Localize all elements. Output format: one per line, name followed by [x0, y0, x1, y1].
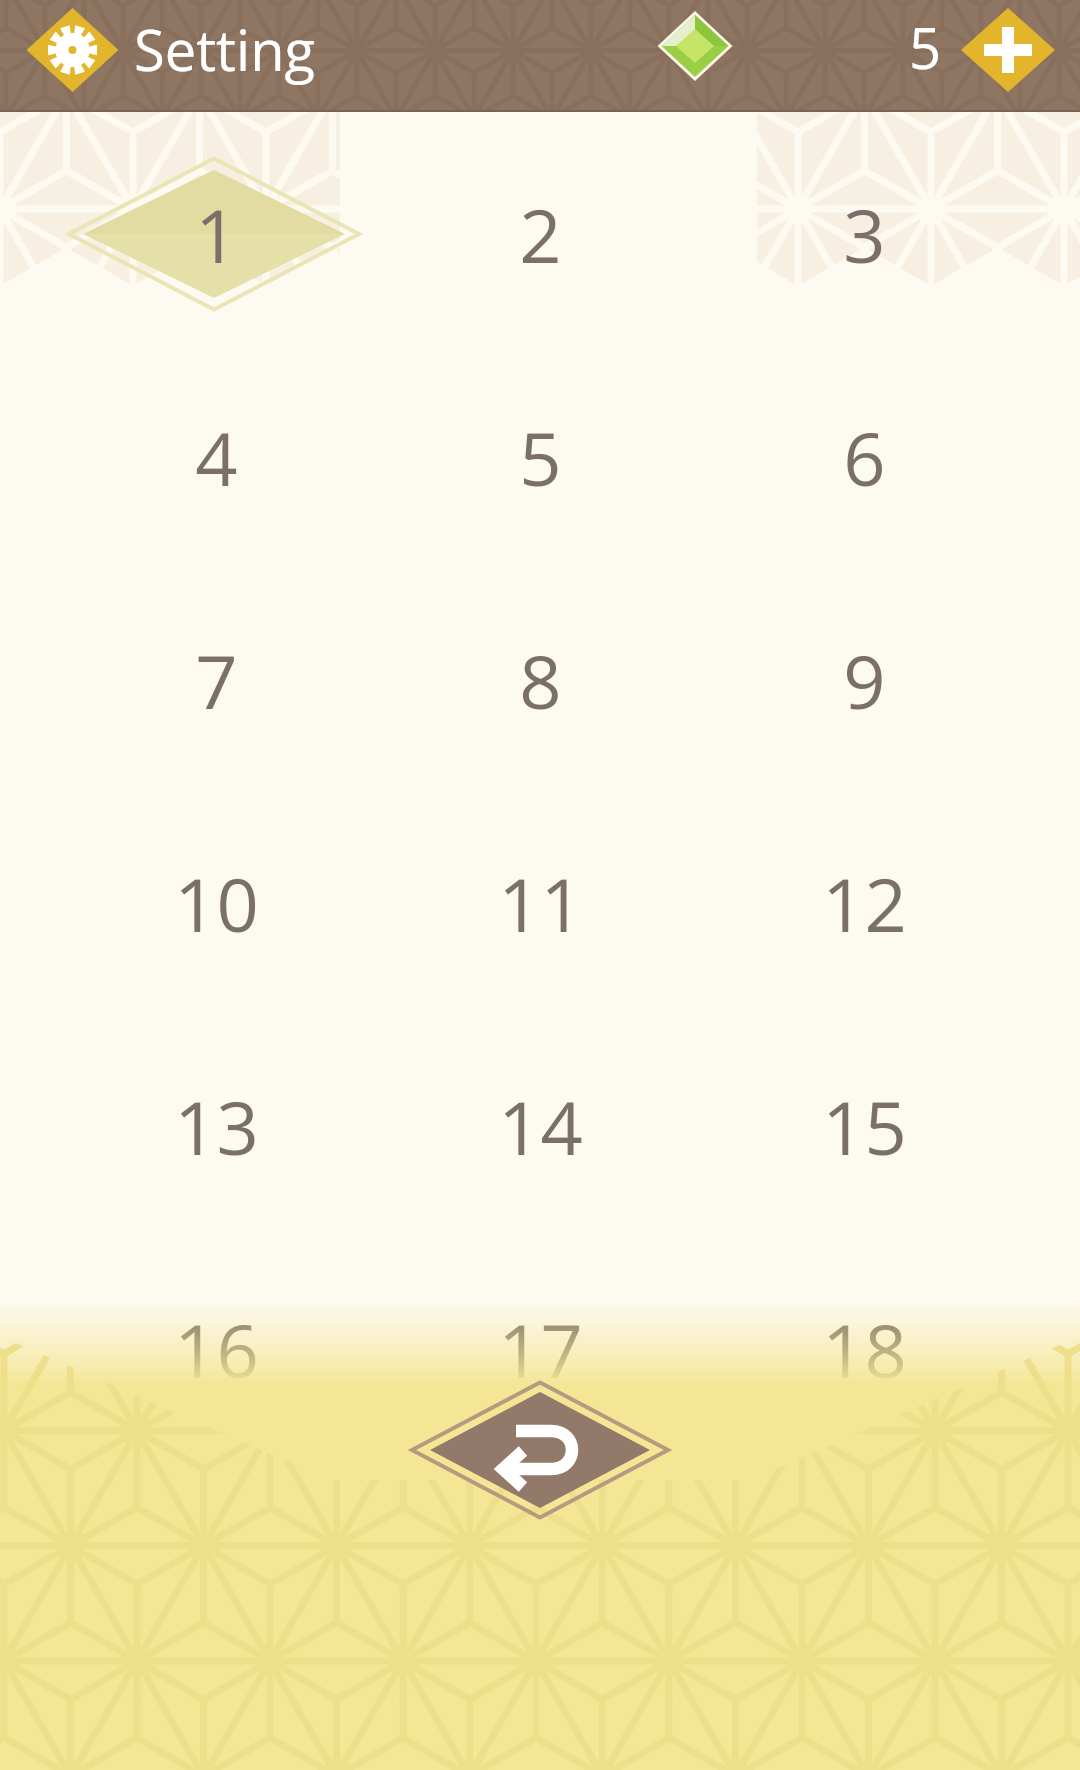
button[interactable]: 15 [702, 1015, 1026, 1238]
staticText: 9 [843, 630, 886, 731]
staticText: 11 [498, 853, 583, 954]
button[interactable]: 3 [702, 123, 1026, 346]
button[interactable]: 5 [378, 346, 702, 569]
button[interactable]: 2 [378, 123, 702, 346]
button[interactable]: 18 [702, 1238, 1026, 1461]
staticText: 13 [174, 1076, 259, 1177]
button[interactable]: 13 [54, 1015, 378, 1238]
button[interactable]: 1 [54, 123, 378, 346]
staticText: 18 [822, 1299, 907, 1400]
staticText: 7 [195, 630, 238, 731]
staticText: 2 [519, 184, 562, 285]
staticText: 5 [519, 407, 562, 508]
staticText: 12 [822, 853, 907, 954]
button[interactable]: 7 [54, 569, 378, 792]
button[interactable]: 11 [378, 792, 702, 1015]
button[interactable]: 12 [702, 792, 1026, 1015]
staticText: 6 [843, 407, 886, 508]
button[interactable]: 17 [378, 1238, 702, 1461]
button[interactable]: 4 [54, 346, 378, 569]
staticText: 1 [195, 184, 238, 285]
button[interactable]: 8 [378, 569, 702, 792]
button[interactable]: 9 [702, 569, 1026, 792]
staticText: 15 [822, 1076, 907, 1177]
staticText: 10 [174, 853, 259, 954]
staticText: 16 [174, 1299, 259, 1400]
button[interactable]: 6 [702, 346, 1026, 569]
staticText: 4 [195, 407, 238, 508]
staticText: 14 [498, 1076, 583, 1177]
button[interactable]: 14 [378, 1015, 702, 1238]
staticText: 3 [843, 184, 886, 285]
staticText: 17 [498, 1299, 583, 1400]
button[interactable]: Settings [26, 8, 119, 92]
button[interactable]: 16 [54, 1238, 378, 1461]
button[interactable]: Back [400, 1370, 680, 1530]
staticText: 8 [519, 630, 562, 731]
button[interactable]: 10 [54, 792, 378, 1015]
button[interactable]: Add gems [961, 8, 1055, 92]
staticText: Setting [134, 11, 315, 87]
staticText: 5 [909, 9, 942, 85]
